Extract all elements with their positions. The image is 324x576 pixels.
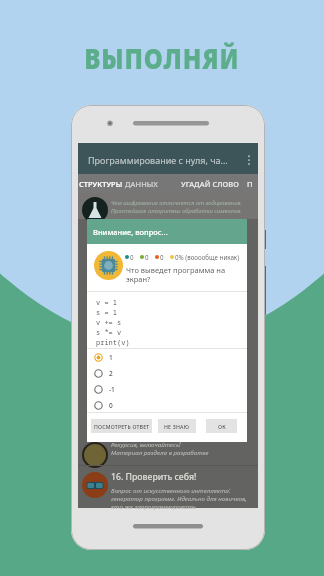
button[interactable]: Чем шифрование отличается от кодирования… (78, 197, 258, 223)
staticText: 0 (109, 401, 113, 410)
staticText: v += s (96, 318, 122, 328)
staticText: 16. Проверить себя! (111, 471, 197, 483)
button[interactable]: П (245, 174, 258, 193)
staticText: Внимание, вопрос... (93, 227, 168, 237)
staticText: s = 1 (96, 308, 117, 318)
staticText: ДАННЫХ (125, 179, 158, 189)
staticText: кто же запрограммировать (111, 502, 197, 510)
staticText: ПОСМОТРЕТЬ ОТВЕТ (94, 423, 150, 430)
button[interactable]: 2 (87, 365, 247, 381)
staticText: print(v) (96, 338, 130, 348)
button[interactable]: Программирование с нуля, ча... (78, 143, 258, 174)
staticText: 0 (145, 253, 149, 261)
button[interactable]: -1 (87, 381, 247, 397)
button[interactable]: ОК (206, 419, 237, 433)
staticText: Простейшие алгоритмы обработки символов. (111, 207, 242, 215)
staticText: Чем шифрование отличается от кодирования… (111, 199, 242, 207)
button[interactable]: СТРУКТУРЫ (78, 174, 179, 193)
staticText: 0 (130, 253, 134, 261)
staticText: v = 1 (96, 298, 117, 308)
staticText: П (247, 179, 253, 189)
staticText: s *= v (96, 328, 122, 338)
button[interactable]: Рекурсия, включайтесь! (78, 440, 258, 466)
staticText: Программирование с нуля, ча... (88, 154, 228, 166)
staticText: УГАДАЙ СЛОВО (181, 179, 240, 189)
staticText: 0% (вооообще никак) (175, 253, 239, 261)
staticText: -1 (109, 385, 115, 394)
staticText: НЕ ЗНАЮ (164, 423, 190, 430)
button[interactable]: ПОСМОТРЕТЬ ОТВЕТ (91, 419, 152, 433)
staticText: СТРУКТУРЫ (79, 179, 125, 189)
staticText: 1 (109, 353, 113, 362)
staticText: Рекурсия, включайтесь! (111, 440, 181, 448)
button[interactable]: More options (243, 151, 255, 167)
button[interactable]: 0 (87, 397, 247, 413)
staticText: 0 (160, 253, 164, 261)
staticText: ОК (218, 423, 226, 430)
staticText: 2 (109, 369, 113, 378)
staticText: генератор программ. Идеально для новичко… (111, 494, 247, 502)
button[interactable]: НЕ ЗНАЮ (158, 419, 196, 433)
staticText: ВЫПОЛНЯЙ (84, 39, 240, 77)
staticText: Материал раздела в разработке (111, 448, 209, 456)
button[interactable]: УГАДАЙ СЛОВО (179, 174, 245, 193)
button[interactable]: 1 (87, 349, 247, 365)
staticText: Что выведет программа на экран? (126, 265, 226, 285)
staticText: Вопрос от искусственного интеллекта: (111, 486, 231, 494)
button[interactable]: 16. Проверить себя! (78, 468, 258, 507)
